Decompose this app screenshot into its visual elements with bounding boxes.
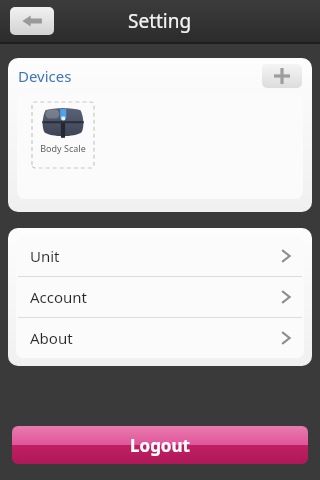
- button[interactable]: Back: [10, 7, 54, 35]
- staticText: Unit: [30, 246, 60, 266]
- staticText: Setting: [128, 8, 192, 34]
- staticText: Logout: [130, 434, 190, 457]
- button[interactable]: Add device: [262, 64, 302, 88]
- staticText: Body Scale: [40, 142, 86, 154]
- button[interactable]: Logout: [12, 426, 308, 464]
- staticText: Account: [30, 287, 88, 307]
- button[interactable]: Body Scale: [32, 102, 94, 168]
- button[interactable]: Unit: [16, 236, 304, 276]
- button[interactable]: About: [16, 318, 304, 358]
- staticText: Devices: [18, 66, 72, 86]
- button[interactable]: Account: [16, 277, 304, 317]
- staticText: About: [30, 328, 73, 348]
